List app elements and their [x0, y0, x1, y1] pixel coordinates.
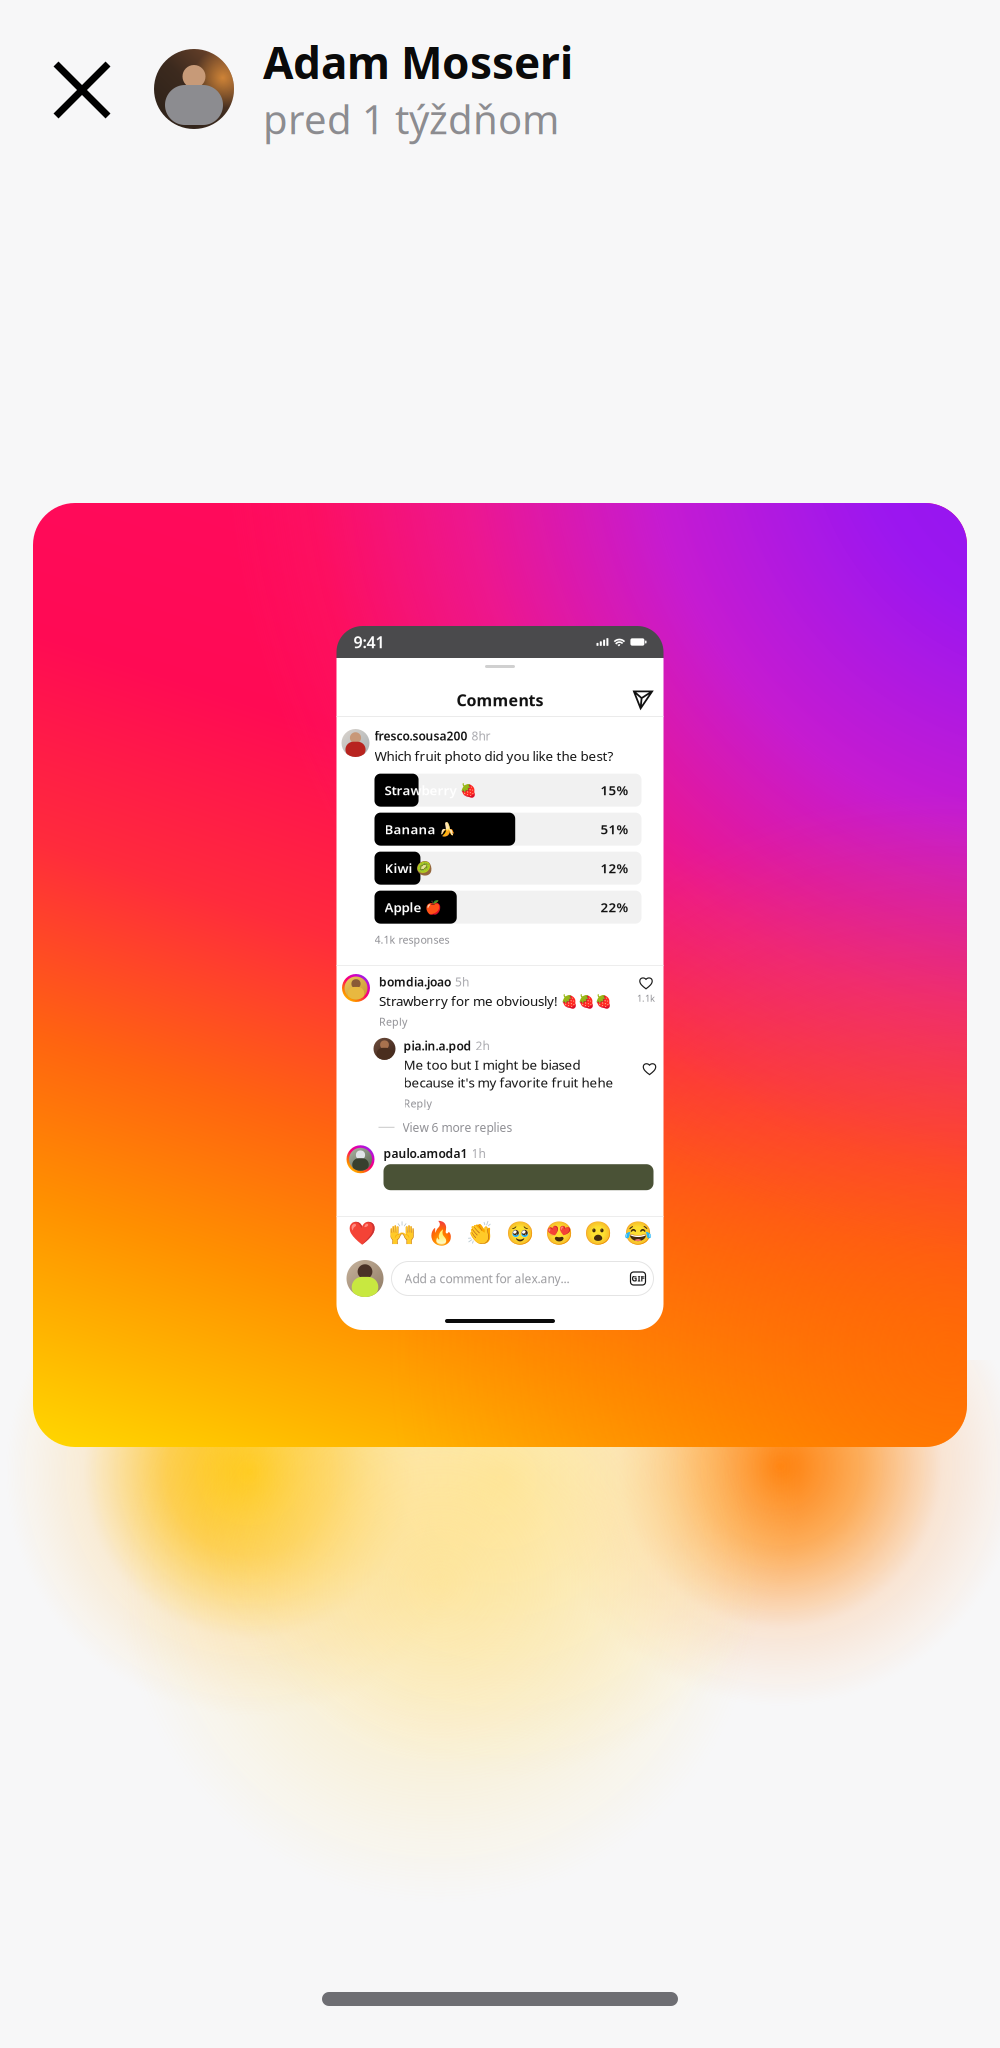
staticText: 51% [600, 820, 628, 838]
button[interactable]: Like [642, 1062, 656, 1076]
button[interactable]: 😮 [579, 1220, 618, 1246]
staticText: 12% [600, 859, 628, 877]
staticText: 1.1k [637, 992, 655, 1004]
button[interactable]: Strawberry 🍓 [374, 774, 641, 807]
staticText: pred 1 týždňom [263, 92, 559, 145]
button[interactable]: 🙌 [382, 1220, 421, 1246]
staticText: 4.1k responses [374, 933, 449, 947]
staticText: Comments [456, 689, 543, 711]
staticText: 8hr [471, 728, 490, 744]
button[interactable]: Apple 🍎 [374, 891, 641, 924]
staticText: 🥹 [506, 1220, 534, 1246]
staticText: 2h [475, 1038, 489, 1054]
staticText: 👏 [466, 1220, 494, 1246]
staticText: bomdia.joao [379, 974, 451, 990]
staticText: paulo.amoda1 [383, 1145, 467, 1161]
staticText: Kiwi 🥝 [384, 859, 432, 877]
staticText: 🔥 [427, 1220, 455, 1246]
staticText: Apple 🍎 [384, 898, 441, 916]
button[interactable]: Banana 🍌 [374, 813, 641, 846]
staticText: Reply [403, 1096, 431, 1110]
staticText: 😮 [584, 1220, 612, 1246]
staticText: 15% [600, 781, 628, 799]
staticText: because it's my favorite fruit hehe [403, 1073, 613, 1091]
button[interactable]: Kiwi 🥝 [374, 852, 641, 885]
staticText: Strawberry 🍓 [384, 781, 476, 799]
staticText: Adam Mosseri [263, 33, 573, 91]
staticText: View 6 more replies [402, 1119, 512, 1135]
staticText: Which fruit photo did you like the best? [374, 747, 613, 765]
staticText: 🙌 [388, 1220, 416, 1246]
button[interactable]: 🔥 [421, 1220, 461, 1246]
staticText: Reply [379, 1015, 407, 1029]
button[interactable]: 👏 [461, 1220, 500, 1246]
staticText: 😂 [624, 1220, 652, 1246]
staticText: fresco.sousa200 [374, 728, 467, 744]
button[interactable]: ❤️ [342, 1220, 382, 1246]
button[interactable]: View 6 more replies [341, 1110, 658, 1135]
staticText: pia.in.a.pod [403, 1038, 471, 1054]
staticText: GIF [631, 1273, 644, 1284]
button[interactable]: Reply [403, 1091, 629, 1110]
staticText: Strawberry for me obviously! 🍓🍓🍓 [379, 992, 612, 1010]
button[interactable]: Adam Mosseri [123, 33, 573, 145]
button[interactable]: 😍 [539, 1220, 579, 1246]
button[interactable]: Reply [379, 1010, 625, 1029]
staticText: Add a comment for alex.any... [404, 1270, 569, 1286]
staticText: Banana 🍌 [384, 820, 455, 838]
staticText: Me too but I might be biased [403, 1056, 580, 1073]
staticText: 5h [455, 974, 469, 990]
button[interactable]: 😂 [618, 1220, 657, 1246]
button[interactable]: Close [41, 48, 123, 130]
button[interactable]: Add a comment for alex.any... [391, 1261, 653, 1295]
staticText: 22% [600, 898, 628, 916]
staticText: ❤️ [348, 1220, 376, 1246]
staticText: 😍 [545, 1220, 573, 1246]
button[interactable]: Like [639, 976, 653, 990]
staticText: 9:41 [353, 631, 384, 653]
staticText: 1h [471, 1145, 485, 1161]
button[interactable]: Share [632, 683, 653, 716]
button[interactable]: 🥹 [500, 1220, 539, 1246]
